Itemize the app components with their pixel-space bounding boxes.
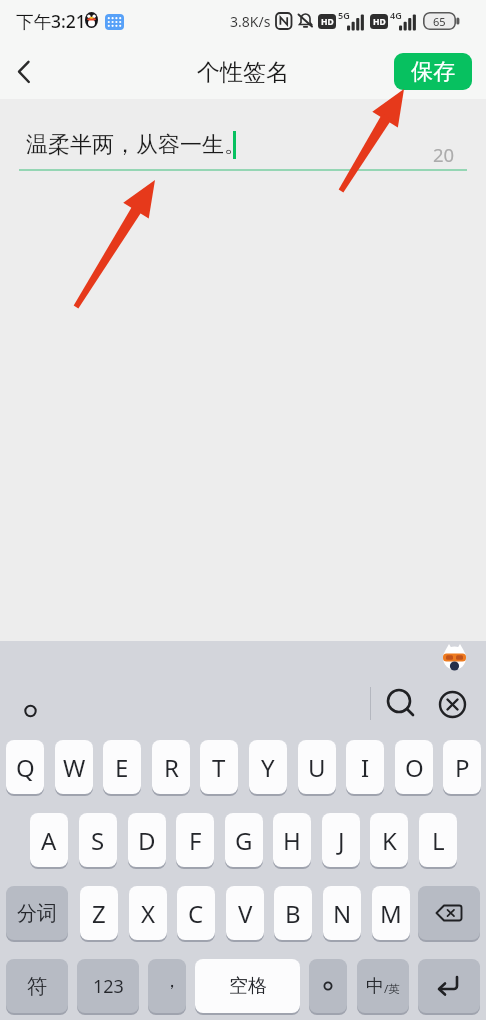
staticText: X [141, 897, 156, 930]
button[interactable]: 123 [77, 959, 139, 1013]
staticText: HD [373, 16, 386, 28]
button[interactable]: 分词 [6, 886, 68, 940]
button[interactable] [437, 689, 468, 720]
button[interactable]: I [346, 740, 384, 794]
staticText: M [380, 897, 402, 930]
button[interactable]: 空格 [195, 959, 300, 1013]
staticText: U [308, 751, 326, 784]
button[interactable]: D [128, 813, 166, 867]
button[interactable]: H [273, 813, 311, 867]
button[interactable]: F [176, 813, 214, 867]
button[interactable]: C [177, 886, 215, 940]
button[interactable]: N [323, 886, 361, 940]
staticText: 3.8K/s [230, 12, 271, 31]
button[interactable]: Z [80, 886, 118, 940]
button[interactable]: L [419, 813, 457, 867]
button[interactable] [385, 687, 418, 720]
staticText: G [235, 824, 253, 857]
button[interactable]: B [274, 886, 312, 940]
staticText: O [405, 751, 424, 784]
staticText: C [188, 897, 204, 930]
button[interactable]: M [372, 886, 410, 940]
button[interactable]: S [79, 813, 117, 867]
staticText: F [189, 824, 202, 857]
staticText: N [333, 897, 352, 930]
button[interactable]: 中 [357, 959, 409, 1013]
button[interactable]: ， [148, 959, 186, 1013]
staticText: A [41, 824, 57, 857]
staticText: V [238, 897, 253, 930]
staticText: 温柔半两，从容一生。 [26, 131, 246, 159]
staticText: 下午3:21 [16, 9, 86, 33]
button[interactable]: E [103, 740, 141, 794]
button[interactable]: T [200, 740, 238, 794]
button[interactable]: U [298, 740, 336, 794]
button[interactable]: P [443, 740, 481, 794]
staticText: 4G [390, 9, 402, 21]
staticText: 符 [27, 974, 47, 999]
staticText: 65 [433, 14, 446, 29]
button[interactable]: R [152, 740, 190, 794]
button[interactable]: X [129, 886, 167, 940]
staticText: K [382, 824, 397, 857]
button[interactable] [418, 959, 480, 1013]
button[interactable] [309, 959, 347, 1013]
staticText: B [285, 897, 301, 930]
button[interactable]: V [226, 886, 264, 940]
staticText: J [338, 824, 345, 857]
staticText: T [212, 751, 226, 784]
staticText: /英 [384, 981, 400, 997]
staticText: Q [16, 751, 35, 784]
staticText: Z [92, 897, 106, 930]
button[interactable]: 保存 [394, 53, 472, 90]
staticText: 20 [433, 142, 455, 167]
staticText: E [115, 751, 129, 784]
button[interactable]: Q [6, 740, 44, 794]
button[interactable]: Y [249, 740, 287, 794]
button[interactable]: W [55, 740, 93, 794]
button[interactable] [24, 704, 38, 718]
staticText: 分词 [17, 901, 57, 926]
staticText: W [63, 751, 86, 784]
button[interactable]: A [30, 813, 68, 867]
staticText: ， [163, 970, 181, 993]
staticText: D [138, 824, 156, 857]
button[interactable]: G [225, 813, 263, 867]
staticText: 保存 [411, 58, 455, 86]
button[interactable] [418, 886, 480, 940]
staticText: 中 [366, 975, 384, 998]
staticText: R [164, 751, 179, 784]
staticText: P [455, 751, 470, 784]
staticText: 5G [338, 9, 350, 21]
staticText: L [432, 824, 445, 857]
button[interactable]: J [322, 813, 360, 867]
staticText: Y [261, 751, 275, 784]
staticText: HD [321, 16, 334, 28]
staticText: 个性签名 [197, 58, 289, 87]
staticText: H [283, 824, 301, 857]
staticText: 123 [93, 974, 124, 999]
button[interactable]: O [395, 740, 433, 794]
button[interactable]: 符 [6, 959, 68, 1013]
staticText: S [91, 824, 105, 857]
button[interactable]: K [370, 813, 408, 867]
button[interactable] [0, 42, 48, 99]
staticText: 空格 [229, 974, 267, 998]
staticText: I [361, 751, 370, 784]
